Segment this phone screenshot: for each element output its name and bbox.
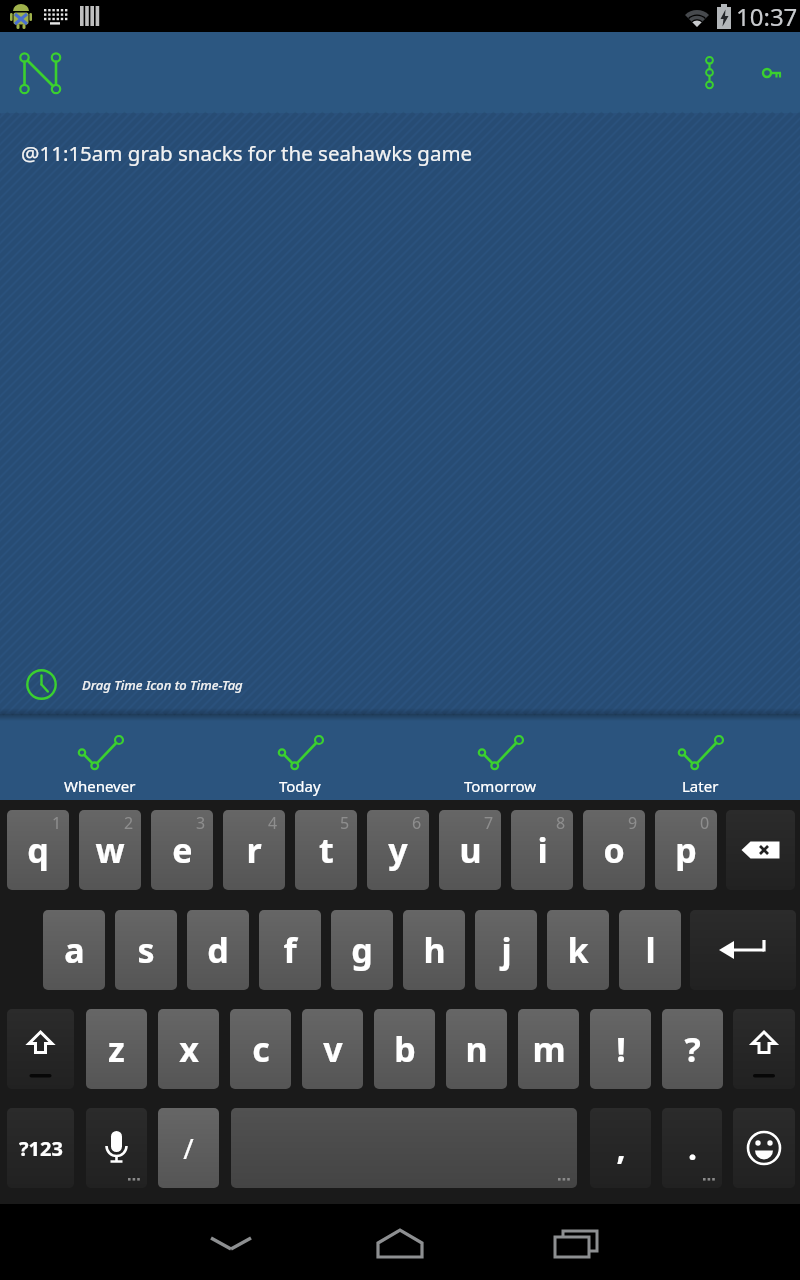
button[interactable]: b xyxy=(374,1009,435,1089)
button[interactable]: e xyxy=(151,810,213,890)
staticText: , xyxy=(616,1126,626,1170)
staticText: i xyxy=(537,827,548,873)
staticText: l xyxy=(645,927,656,973)
button[interactable]: d xyxy=(187,910,249,990)
staticText: d xyxy=(207,927,229,973)
button[interactable]: ? xyxy=(662,1009,723,1089)
staticText: g xyxy=(351,927,373,973)
staticText: 6 xyxy=(412,812,422,834)
staticText: ! xyxy=(616,1026,626,1072)
staticText: Today xyxy=(279,776,321,796)
staticText: m xyxy=(532,1026,566,1072)
button[interactable]: z xyxy=(86,1009,147,1089)
button[interactable]: o xyxy=(583,810,645,890)
staticText: Tomorrow xyxy=(464,776,537,796)
staticText: k xyxy=(567,927,589,973)
button[interactable]: Today xyxy=(200,714,400,800)
staticText: n xyxy=(465,1026,488,1072)
staticText: 4 xyxy=(268,812,278,834)
staticText: c xyxy=(252,1026,270,1072)
staticText: y xyxy=(388,827,408,873)
staticText: 5 xyxy=(340,812,350,834)
button[interactable]: y xyxy=(367,810,429,890)
button[interactable]: x xyxy=(158,1009,219,1089)
staticText: 8 xyxy=(556,812,566,834)
staticText: Drag Time Icon to Time-Tag xyxy=(82,676,243,694)
staticText: 3 xyxy=(196,812,206,834)
staticText: ?123 xyxy=(19,1135,63,1162)
button[interactable] xyxy=(8,40,72,104)
staticText: q xyxy=(27,827,49,873)
staticText: r xyxy=(246,827,262,873)
button[interactable]: l xyxy=(619,910,681,990)
button[interactable] xyxy=(733,1108,795,1188)
button[interactable]: Tomorrow xyxy=(400,714,600,800)
staticText: u xyxy=(459,827,482,873)
staticText: Later xyxy=(682,776,719,796)
button[interactable] xyxy=(726,810,795,890)
staticText: f xyxy=(283,927,297,973)
staticText: z xyxy=(108,1026,125,1072)
staticText: p xyxy=(675,827,697,873)
staticText: j xyxy=(501,927,512,973)
button[interactable]: i xyxy=(511,810,573,890)
button[interactable]: f xyxy=(259,910,321,990)
staticText: . xyxy=(688,1126,697,1170)
button[interactable]: v xyxy=(302,1009,363,1089)
button[interactable] xyxy=(181,1204,281,1280)
staticText: 2 xyxy=(124,812,134,834)
button[interactable]: , xyxy=(590,1108,651,1188)
staticText: w xyxy=(95,827,125,873)
button[interactable]: w xyxy=(79,810,141,890)
button[interactable]: n xyxy=(446,1009,507,1089)
staticText: o xyxy=(603,827,625,873)
staticText: t xyxy=(319,827,334,873)
button[interactable] xyxy=(523,1204,623,1280)
button[interactable] xyxy=(350,1204,450,1280)
button[interactable]: ! xyxy=(590,1009,651,1089)
staticText: / xyxy=(183,1129,194,1167)
staticText: h xyxy=(423,927,446,973)
button[interactable]: / xyxy=(158,1108,219,1188)
staticText: ? xyxy=(684,1026,701,1072)
button[interactable] xyxy=(748,53,792,93)
button[interactable]: a xyxy=(43,910,105,990)
button[interactable]: q xyxy=(7,810,69,890)
button[interactable]: Later xyxy=(600,714,800,800)
button[interactable]: s xyxy=(115,910,177,990)
button[interactable]: t xyxy=(295,810,357,890)
button[interactable] xyxy=(7,1009,74,1089)
button[interactable] xyxy=(733,1009,795,1089)
staticText: 10:37 xyxy=(736,0,798,32)
button[interactable]: . xyxy=(662,1108,722,1188)
button[interactable] xyxy=(685,48,734,97)
staticText: 0 xyxy=(700,812,710,834)
button[interactable] xyxy=(690,910,796,990)
staticText: Whenever xyxy=(64,776,136,796)
staticText: x xyxy=(179,1026,199,1072)
button[interactable]: g xyxy=(331,910,393,990)
staticText: 7 xyxy=(484,812,494,834)
button[interactable]: m xyxy=(518,1009,579,1089)
button[interactable]: r xyxy=(223,810,285,890)
staticText: e xyxy=(172,827,193,873)
button[interactable]: p xyxy=(655,810,717,890)
staticText: @11:15am grab snacks for the seahawks ga… xyxy=(21,139,473,167)
button[interactable]: c xyxy=(230,1009,291,1089)
staticText: b xyxy=(394,1026,416,1072)
staticText: 9 xyxy=(628,812,638,834)
staticText: v xyxy=(323,1026,343,1072)
button[interactable]: j xyxy=(475,910,537,990)
button[interactable]: Whenever xyxy=(0,714,200,800)
staticText: s xyxy=(137,927,155,973)
button[interactable]: ?123 xyxy=(7,1108,74,1188)
button[interactable]: u xyxy=(439,810,501,890)
staticText: a xyxy=(64,927,85,973)
button[interactable]: h xyxy=(403,910,465,990)
button[interactable] xyxy=(86,1108,147,1188)
staticText: 1 xyxy=(52,812,62,834)
button[interactable] xyxy=(231,1108,577,1188)
button[interactable]: k xyxy=(547,910,609,990)
